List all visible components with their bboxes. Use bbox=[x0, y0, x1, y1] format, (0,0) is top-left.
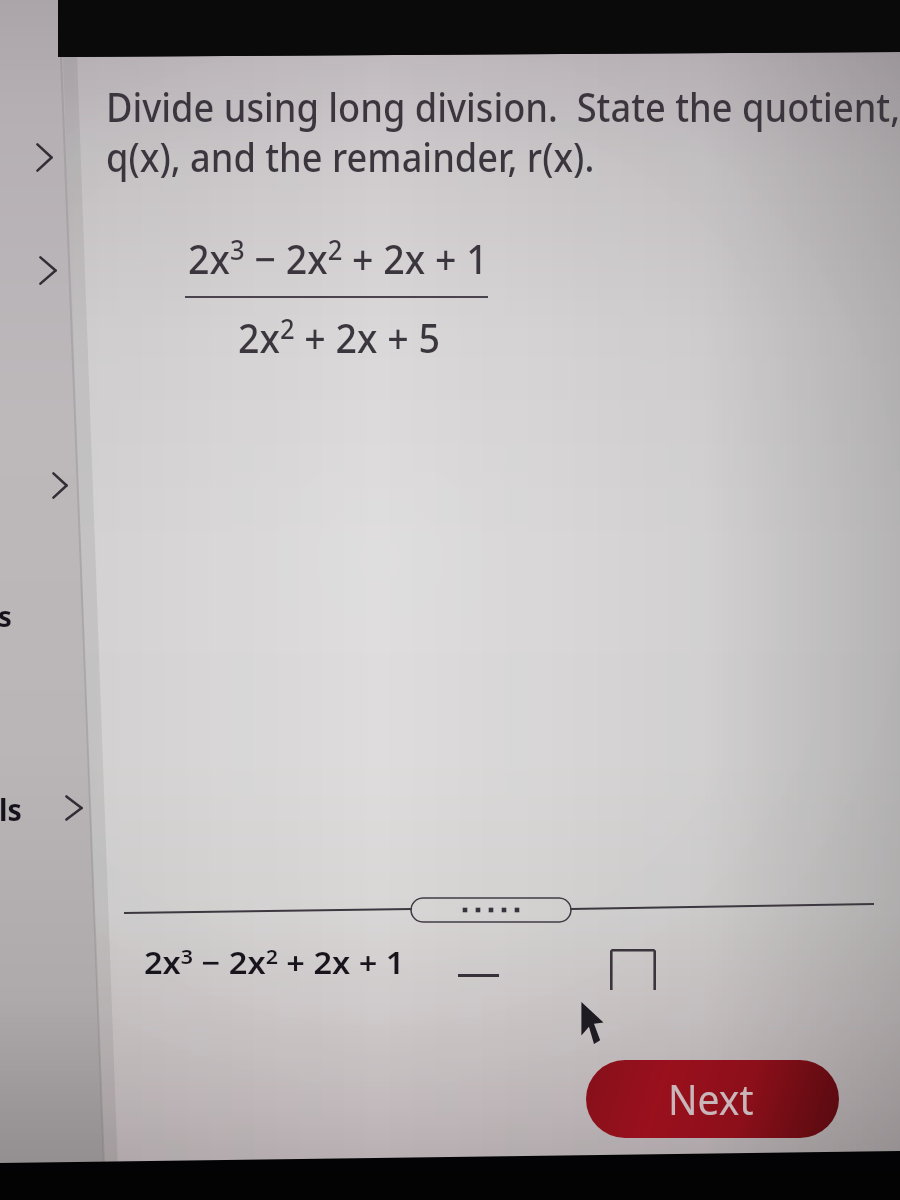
staticText: 2x3 − 2x2 + 2x + 1 bbox=[188, 231, 488, 286]
staticText: ts bbox=[0, 596, 13, 635]
other: Mouse pointer bbox=[580, 1002, 608, 1044]
staticText: Divide using long division. State the qu… bbox=[106, 79, 900, 133]
button[interactable]: Next bbox=[586, 1060, 839, 1138]
button[interactable]: Show the hidden steps bbox=[410, 897, 572, 923]
button[interactable]: Expand Results bbox=[52, 472, 68, 499]
button[interactable]: Expand Tools bbox=[65, 795, 83, 821]
button[interactable]: Expand Assignments bbox=[36, 143, 53, 172]
button[interactable]: Expand Gradebook bbox=[39, 256, 57, 285]
staticText: 2x2 + 2x + 5 bbox=[238, 310, 440, 365]
staticText: Next bbox=[668, 1071, 753, 1127]
staticText: 2x3 − 2x2 + 2x + 1 bbox=[144, 941, 405, 983]
staticText: q(x), and the remainder, r(x). bbox=[106, 129, 595, 183]
staticText: Tools bbox=[0, 789, 22, 830]
